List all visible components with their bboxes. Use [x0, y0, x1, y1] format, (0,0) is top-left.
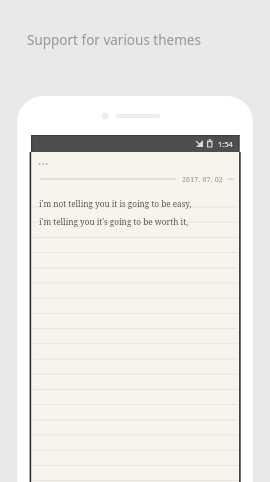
button[interactable]	[0, 0, 270, 482]
button[interactable]: Notepad app preview	[0, 0, 270, 482]
